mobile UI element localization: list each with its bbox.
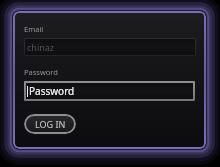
button[interactable]: Password input [24,81,195,101]
staticText: chinaz [27,41,55,53]
staticText: LOG IN [35,118,66,130]
button[interactable]: LOG IN [24,114,76,134]
staticText: Email [24,24,44,34]
staticText: Password [24,67,58,77]
staticText: Password [29,84,75,98]
button[interactable]: Email input [24,38,196,56]
